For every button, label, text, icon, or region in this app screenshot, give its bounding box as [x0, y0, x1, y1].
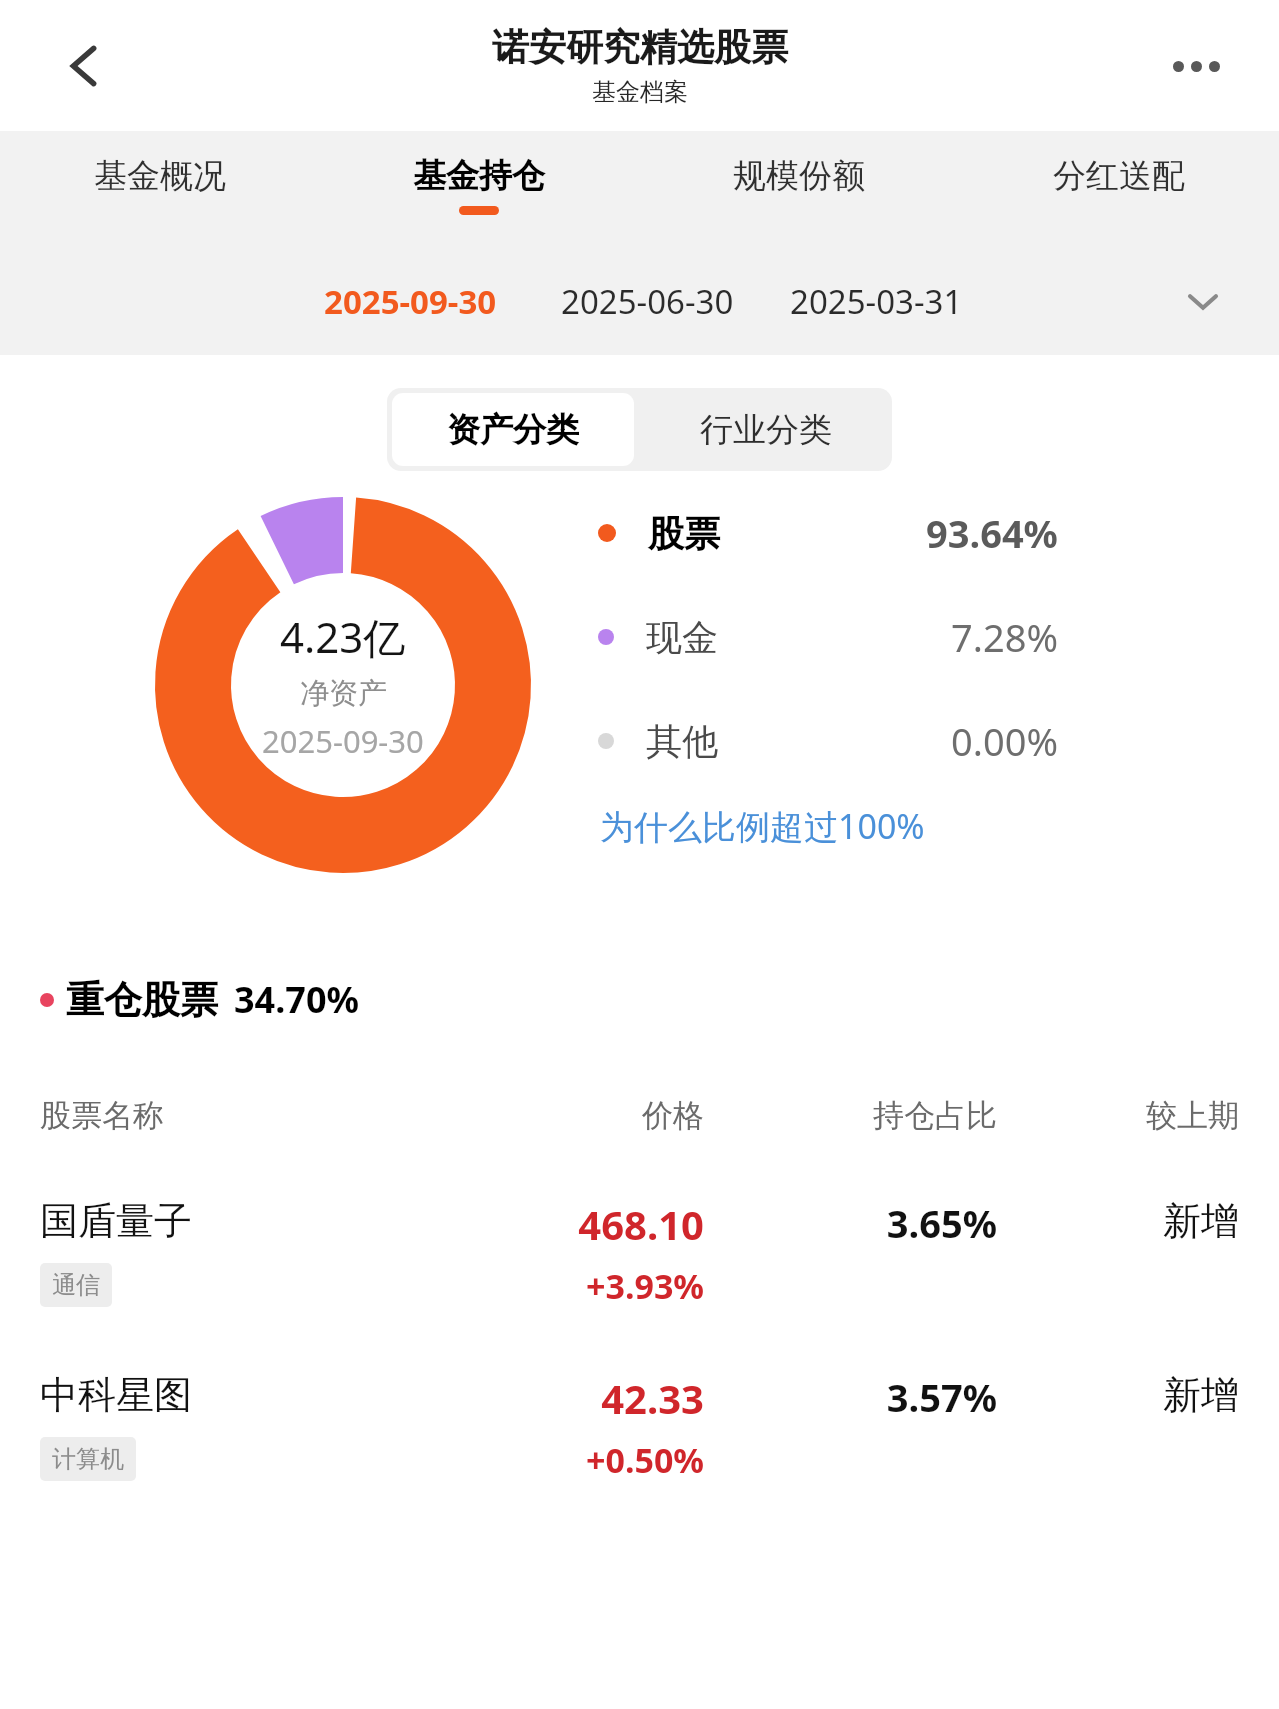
- staticText: 34.70%: [234, 975, 359, 1024]
- staticText: 现金: [646, 615, 718, 660]
- staticText: 3.65%: [886, 1197, 997, 1249]
- staticText: 净资产: [300, 675, 387, 712]
- staticText: +3.93%: [585, 1263, 704, 1309]
- staticText: 中科星图: [40, 1371, 192, 1419]
- staticText: 计算机: [52, 1444, 124, 1474]
- staticText: 基金概况: [94, 155, 226, 197]
- staticText: 新增: [1163, 1197, 1239, 1245]
- staticText: 基金持仓: [413, 155, 545, 197]
- staticText: 新增: [1163, 1371, 1239, 1419]
- staticText: 7.28%: [951, 611, 1058, 663]
- button[interactable]: Expand date list: [1173, 271, 1233, 331]
- staticText: 分红送配: [1053, 155, 1185, 197]
- button[interactable]: 为什么比例超过100%: [600, 803, 925, 849]
- button[interactable]: 其他: [598, 715, 1058, 767]
- staticText: 股票名称: [40, 1096, 436, 1135]
- button[interactable]: 行业分类: [639, 388, 892, 471]
- staticText: 诺安研究精选股票: [492, 24, 788, 71]
- button[interactable]: 国盾量子: [0, 1135, 1279, 1309]
- button[interactable]: 2025-03-31: [784, 279, 969, 324]
- staticText: 468.10: [578, 1197, 704, 1251]
- staticText: 行业分类: [700, 409, 832, 451]
- staticText: 较上期: [997, 1096, 1239, 1135]
- staticText: 42.33: [601, 1371, 704, 1425]
- staticText: +0.50%: [585, 1437, 704, 1483]
- staticText: 2025-03-31: [790, 279, 963, 324]
- staticText: 2025-06-30: [561, 279, 734, 324]
- button[interactable]: 规模份额: [639, 131, 959, 239]
- button[interactable]: 基金持仓: [319, 131, 639, 239]
- staticText: 2025-09-30: [262, 720, 424, 762]
- staticText: 0.00%: [951, 715, 1058, 767]
- staticText: 3.57%: [886, 1371, 997, 1423]
- button[interactable]: 2025-06-30: [555, 279, 740, 324]
- staticText: 为什么比例超过100%: [600, 803, 925, 849]
- button[interactable]: 现金: [598, 611, 1058, 663]
- button[interactable]: 中科星图: [0, 1309, 1279, 1483]
- staticText: 其他: [646, 719, 718, 764]
- staticText: 重仓股票: [66, 976, 218, 1024]
- staticText: 通信: [52, 1270, 100, 1300]
- button[interactable]: 2025-09-30: [318, 279, 503, 324]
- button[interactable]: 资产分类: [392, 393, 634, 466]
- staticText: 价格: [436, 1096, 704, 1135]
- button[interactable]: 分红送配: [959, 131, 1279, 239]
- staticText: 2025-09-30: [324, 279, 497, 324]
- staticText: 规模份额: [733, 155, 865, 197]
- staticText: 持仓占比: [704, 1096, 997, 1135]
- button[interactable]: 基金概况: [0, 131, 319, 239]
- staticText: 国盾量子: [40, 1197, 192, 1245]
- staticText: 基金档案: [592, 77, 688, 107]
- button[interactable]: 股票: [598, 507, 1058, 559]
- staticText: 资产分类: [447, 409, 579, 451]
- button[interactable]: Back: [48, 30, 120, 102]
- staticText: 4.23亿: [280, 608, 406, 665]
- button[interactable]: More options: [1153, 30, 1239, 102]
- staticText: 93.64%: [926, 507, 1058, 559]
- staticText: 股票: [648, 511, 720, 556]
